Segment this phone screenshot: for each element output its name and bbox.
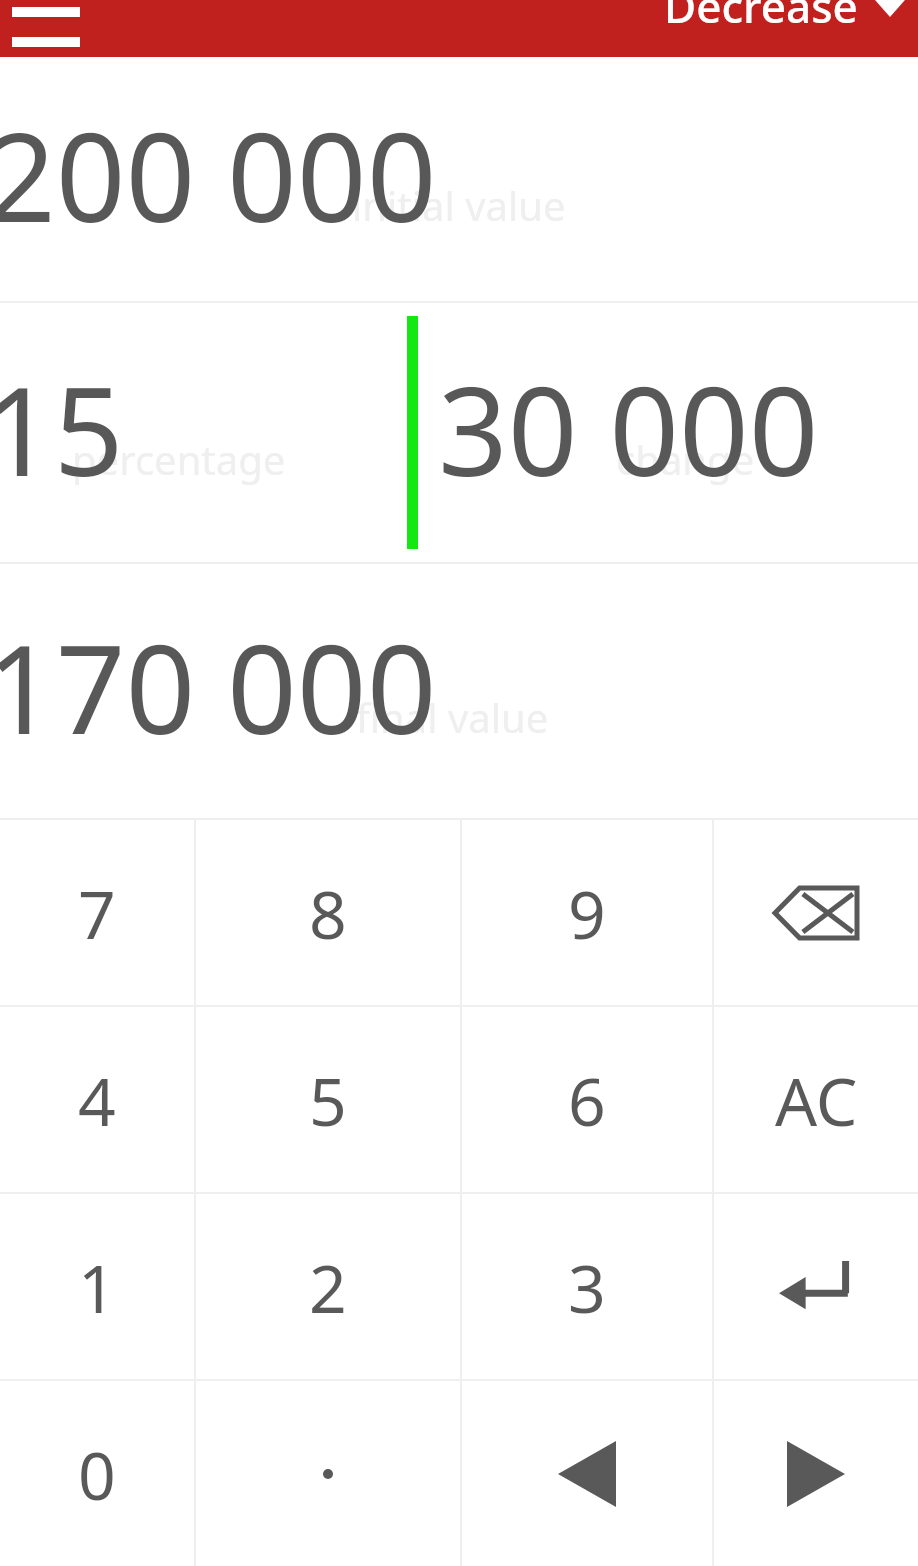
staticText: 4 — [78, 1055, 116, 1145]
button[interactable]: 1 — [0, 1194, 194, 1379]
staticText: 1 — [78, 1242, 116, 1332]
button[interactable]: Open navigation menu — [0, 0, 96, 57]
button[interactable]: final value — [0, 564, 918, 818]
staticText: Decrease — [664, 0, 858, 33]
button[interactable]: Move cursor left — [462, 1381, 712, 1566]
staticText: 8 — [309, 868, 347, 958]
button[interactable]: 9 — [462, 820, 712, 1005]
button[interactable]: Move cursor right — [714, 1381, 918, 1566]
staticText: 15 — [0, 346, 124, 512]
staticText: 5 — [309, 1055, 347, 1145]
button[interactable]: 3 — [462, 1194, 712, 1379]
staticText: percentage — [72, 432, 286, 486]
button[interactable]: 0 — [0, 1381, 194, 1566]
staticText: AC — [775, 1055, 858, 1145]
staticText: 200 000 — [0, 92, 437, 258]
button[interactable]: Decrease — [664, 0, 908, 33]
staticText: 9 — [568, 868, 606, 958]
button[interactable]: AC — [714, 1007, 918, 1192]
button[interactable]: change — [418, 303, 918, 562]
button[interactable]: Backspace — [714, 820, 918, 1005]
button[interactable]: 8 — [196, 820, 460, 1005]
staticText: 3 — [568, 1242, 606, 1332]
staticText: 0 — [78, 1429, 116, 1519]
staticText: final value — [356, 690, 549, 744]
staticText: change — [616, 432, 755, 486]
button[interactable]: 5 — [196, 1007, 460, 1192]
staticText: 170 000 — [0, 604, 437, 770]
staticText: 7 — [78, 868, 116, 958]
button[interactable]: initial value — [0, 57, 918, 301]
staticText: 6 — [568, 1055, 606, 1145]
staticText: 30 000 — [438, 346, 819, 512]
button[interactable]: 6 — [462, 1007, 712, 1192]
button[interactable]: 2 — [196, 1194, 460, 1379]
button[interactable]: 4 — [0, 1007, 194, 1192]
button[interactable]: Enter — [714, 1194, 918, 1379]
staticText: initial value — [352, 178, 566, 232]
button[interactable]: Decimal point — [196, 1381, 460, 1566]
button[interactable]: percentage — [0, 303, 407, 562]
staticText: 2 — [309, 1242, 347, 1332]
button[interactable]: 7 — [0, 820, 194, 1005]
